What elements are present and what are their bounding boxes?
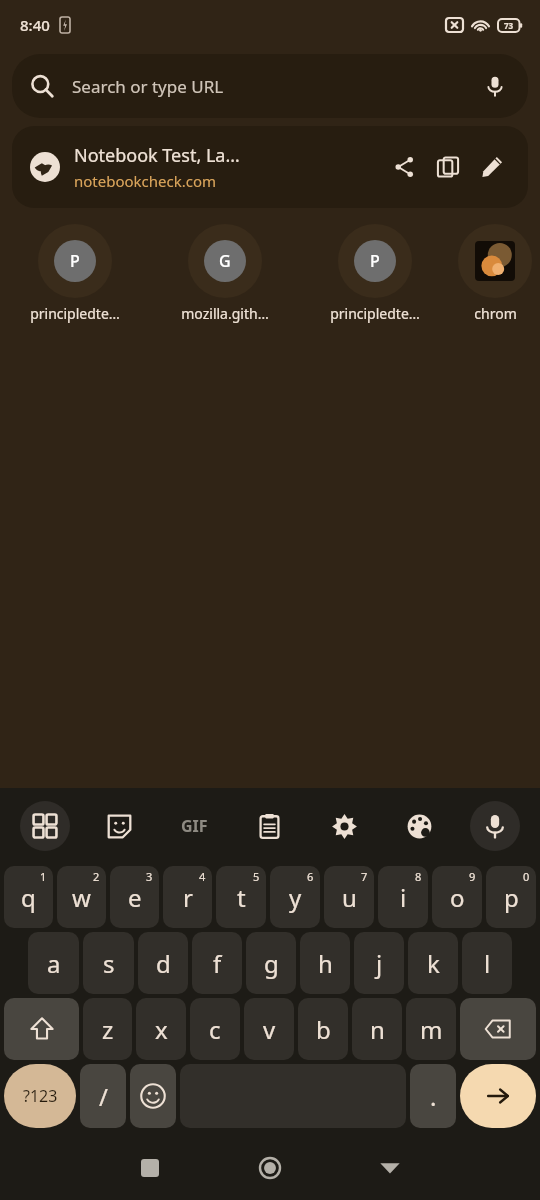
staticText: h <box>318 947 333 980</box>
staticText: Search or type URL <box>72 75 480 98</box>
button[interactable]: l <box>462 932 512 994</box>
staticText: j <box>376 947 383 980</box>
button[interactable]: x <box>136 998 186 1060</box>
staticText: 8:40 <box>20 15 50 35</box>
button[interactable]: chrom <box>450 224 540 323</box>
button[interactable]: m <box>406 998 456 1060</box>
button[interactable]: Stickers <box>82 788 157 864</box>
button[interactable]: P <box>300 224 450 323</box>
button[interactable]: Copy <box>426 145 470 189</box>
button[interactable]: u <box>324 866 374 928</box>
button[interactable]: v <box>244 998 294 1060</box>
button[interactable]: o <box>432 866 482 928</box>
staticText: e <box>128 881 142 914</box>
staticText: q <box>21 881 36 914</box>
staticText: d <box>156 947 171 980</box>
staticText: P <box>370 250 380 272</box>
staticText: mozilla.gith… <box>181 304 269 323</box>
staticText: g <box>264 947 279 980</box>
button[interactable]: i <box>378 866 428 928</box>
staticText: r <box>183 881 193 914</box>
button[interactable]: Voice input <box>457 788 532 864</box>
staticText: GIF <box>181 815 208 837</box>
staticText: w <box>72 881 91 914</box>
button[interactable]: Search or type URL <box>12 54 528 118</box>
staticText: chrom <box>474 304 517 323</box>
staticText: a <box>47 947 61 980</box>
staticText: 2 <box>93 869 100 884</box>
button[interactable]: Theme <box>382 788 457 864</box>
staticText: 7 <box>361 869 368 884</box>
button[interactable]: Home <box>210 1136 330 1200</box>
button[interactable]: Backspace <box>460 998 536 1060</box>
staticText: n <box>370 1013 385 1046</box>
staticText: G <box>219 250 231 272</box>
button[interactable]: k <box>408 932 458 994</box>
staticText: Notebook Test, La… <box>74 143 240 168</box>
button[interactable]: w <box>57 866 106 928</box>
staticText: 73 <box>504 20 514 31</box>
button[interactable]: / <box>80 1064 126 1128</box>
button[interactable]: Share <box>382 145 426 189</box>
staticText: principledte… <box>30 304 120 323</box>
button[interactable]: Apps <box>8 788 82 864</box>
staticText: s <box>103 947 115 980</box>
staticText: 5 <box>253 869 260 884</box>
button[interactable]: Recents <box>90 1136 210 1200</box>
button[interactable]: e <box>110 866 159 928</box>
button[interactable]: d <box>138 932 188 994</box>
button[interactable]: . <box>410 1064 456 1128</box>
staticText: y <box>289 881 302 914</box>
button[interactable]: Emoji <box>130 1064 176 1128</box>
button[interactable]: P <box>0 224 150 323</box>
button[interactable]: Notebook Test, La… <box>12 126 528 208</box>
button[interactable]: t <box>216 866 266 928</box>
staticText: l <box>484 947 491 980</box>
button[interactable]: g <box>246 932 296 994</box>
staticText: . <box>430 1080 437 1113</box>
button[interactable]: Go <box>460 1064 536 1128</box>
button[interactable]: Edit <box>470 145 514 189</box>
button[interactable]: GIF <box>157 788 232 864</box>
staticText: 6 <box>307 869 314 884</box>
button[interactable]: Voice search <box>480 71 510 101</box>
staticText: u <box>342 881 357 914</box>
staticText: 9 <box>469 869 476 884</box>
staticText: 4 <box>199 869 206 884</box>
button[interactable]: c <box>190 998 240 1060</box>
button[interactable]: n <box>352 998 402 1060</box>
staticText: x <box>155 1013 168 1046</box>
staticText: b <box>316 1013 331 1046</box>
button[interactable]: Back <box>330 1136 450 1200</box>
staticText: 3 <box>146 869 153 884</box>
button[interactable]: ?123 <box>4 1064 76 1128</box>
staticText: 0 <box>523 869 530 884</box>
staticText: 1 <box>40 869 47 884</box>
staticText: / <box>99 1080 108 1113</box>
staticText: k <box>427 947 440 980</box>
staticText: f <box>213 947 222 980</box>
button[interactable]: Settings <box>307 788 382 864</box>
button[interactable]: s <box>83 932 134 994</box>
button[interactable]: b <box>298 998 348 1060</box>
button[interactable]: G <box>150 224 300 323</box>
button[interactable]: a <box>28 932 79 994</box>
staticText: t <box>237 881 246 914</box>
staticText: p <box>504 881 519 914</box>
staticText: ?123 <box>23 1085 58 1107</box>
staticText: v <box>263 1013 276 1046</box>
button[interactable]: h <box>300 932 350 994</box>
button[interactable]: q <box>4 866 53 928</box>
button[interactable]: z <box>83 998 132 1060</box>
button[interactable]: f <box>192 932 242 994</box>
button[interactable]: Clipboard <box>232 788 307 864</box>
button[interactable]: y <box>270 866 320 928</box>
button[interactable]: Shift <box>4 998 79 1060</box>
staticText: z <box>102 1013 114 1046</box>
button[interactable]: p <box>486 866 536 928</box>
staticText: i <box>400 881 407 914</box>
button[interactable]: j <box>354 932 404 994</box>
button[interactable]: r <box>163 866 212 928</box>
staticText: 8 <box>415 869 422 884</box>
